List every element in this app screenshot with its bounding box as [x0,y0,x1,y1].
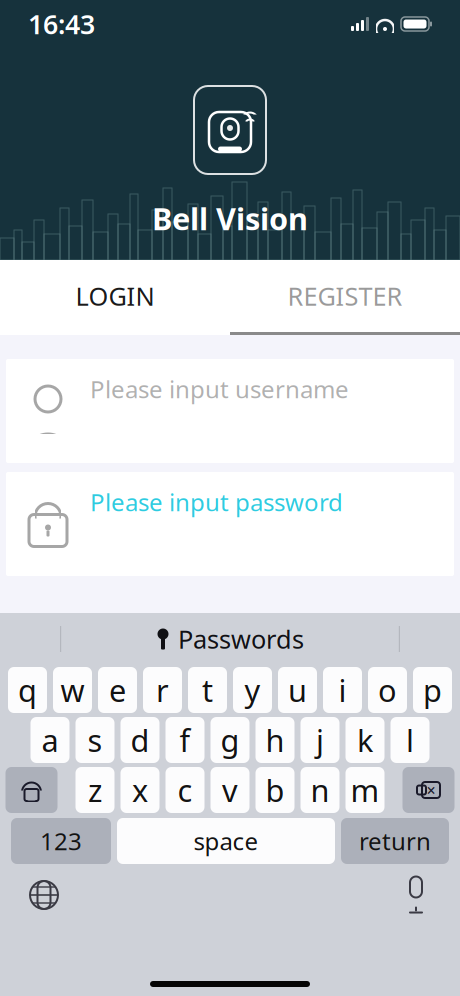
staticText: h [265,720,284,760]
staticText: a [41,720,58,760]
staticText: r [156,670,169,710]
button[interactable] [394,873,438,917]
staticText: o [378,670,397,710]
button[interactable]: d [120,717,159,763]
button[interactable]: y [233,667,272,713]
staticText: d [130,720,149,760]
staticText: y [244,670,260,710]
button[interactable]: r [143,667,182,713]
button[interactable]: b [255,767,294,813]
button[interactable]: Please input password [6,472,454,576]
button[interactable]: x [120,767,159,813]
button[interactable]: REGISTER [230,260,460,332]
staticText: LOGIN [75,279,154,313]
button[interactable]: h [255,717,294,763]
button[interactable]: t [188,667,227,713]
button[interactable]: k [345,717,384,763]
staticText: space [193,825,258,857]
button[interactable]: LOGIN [0,260,230,332]
button[interactable]: Passwords [146,617,314,661]
button[interactable]: return [341,818,449,864]
staticText: j [316,720,324,760]
button[interactable]: i [323,667,362,713]
staticText: Please input password [90,486,343,518]
button[interactable]: Please input username [6,359,454,463]
staticText: z [88,770,102,810]
button[interactable]: w [53,667,92,713]
button[interactable]: f [165,717,204,763]
button[interactable]: v [210,767,249,813]
staticText: s [87,720,102,760]
staticText: f [179,720,190,760]
staticText: q [18,670,37,710]
staticText: c [177,770,192,810]
button[interactable]: a [30,717,69,763]
button[interactable]: g [210,717,249,763]
button[interactable]: j [300,717,339,763]
staticText: m [350,770,379,810]
button[interactable] [5,767,57,813]
staticText: Bell Vision [152,198,308,239]
staticText: return [359,825,431,857]
button[interactable]: p [413,667,452,713]
button[interactable]: q [8,667,47,713]
staticText: l [406,720,414,760]
staticText: u [288,670,307,710]
button[interactable] [22,873,66,917]
button[interactable]: 123 [11,818,111,864]
button[interactable]: s [75,717,114,763]
staticText: x [132,770,148,810]
staticText: w [60,670,84,710]
staticText: g [220,720,239,760]
button[interactable]: l [390,717,429,763]
staticText: REGISTER [287,279,402,313]
staticText: v [222,770,238,810]
staticText: k [357,720,373,760]
button[interactable]: m [345,767,384,813]
button[interactable]: z [75,767,114,813]
button[interactable]: n [300,767,339,813]
button[interactable]: c [165,767,204,813]
staticText: Please input username [90,373,349,405]
staticText: b [265,770,284,810]
staticText: p [423,670,442,710]
staticText: Passwords [178,622,304,656]
staticText: t [202,670,213,710]
staticText: × [426,779,435,801]
button[interactable]: e [98,667,137,713]
button[interactable]: o [368,667,407,713]
staticText: n [310,770,329,810]
button[interactable]: u [278,667,317,713]
staticText: 123 [40,825,82,857]
staticText: e [109,670,126,710]
staticText: i [338,670,346,710]
button[interactable]: space [117,818,335,864]
button[interactable]: × [402,767,454,813]
staticText: 16:43 [28,6,95,42]
